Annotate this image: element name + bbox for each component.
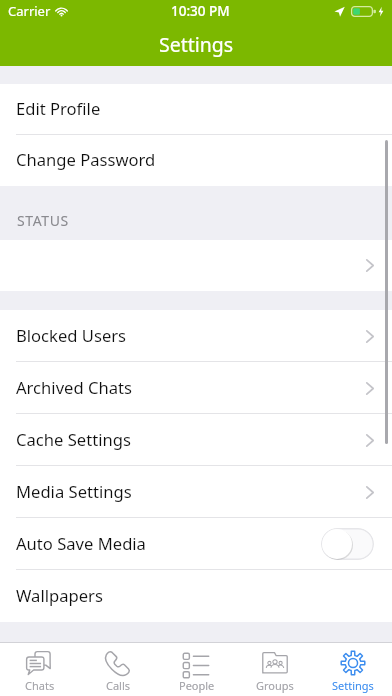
- staticText: Settings: [159, 31, 234, 58]
- button[interactable]: Set status: [0, 240, 392, 291]
- button[interactable]: Edit Profile: [0, 84, 392, 135]
- button[interactable]: People: [158, 643, 236, 696]
- button[interactable]: Wallpapers: [0, 570, 392, 622]
- button[interactable]: Settings: [314, 643, 392, 696]
- staticText: Blocked Users: [16, 324, 127, 347]
- button[interactable]: Archived Chats: [0, 362, 392, 414]
- staticText: Chats: [25, 678, 55, 693]
- button[interactable]: Blocked Users: [0, 310, 392, 362]
- staticText: Auto Save Media: [16, 532, 146, 555]
- button[interactable]: Calls: [79, 643, 158, 696]
- button[interactable]: Auto Save Media toggle, off: [321, 528, 374, 560]
- button[interactable]: Groups: [236, 643, 314, 696]
- staticText: 10:30 PM: [171, 2, 230, 20]
- staticText: Groups: [256, 678, 294, 693]
- staticText: Media Settings: [16, 480, 132, 503]
- staticText: Cache Settings: [16, 428, 131, 451]
- staticText: STATUS: [17, 211, 69, 230]
- staticText: Change Password: [16, 148, 156, 171]
- staticText: Carrier: [8, 2, 51, 20]
- button[interactable]: Cache Settings: [0, 414, 392, 466]
- staticText: Wallpapers: [16, 584, 103, 607]
- staticText: Archived Chats: [16, 376, 132, 399]
- button[interactable]: Auto Save Media: [0, 518, 392, 570]
- staticText: Settings: [332, 678, 374, 693]
- button[interactable]: Chats: [0, 643, 79, 696]
- button[interactable]: Media Settings: [0, 466, 392, 518]
- staticText: Calls: [106, 678, 131, 693]
- staticText: People: [179, 678, 215, 693]
- staticText: Edit Profile: [16, 97, 101, 120]
- button[interactable]: Change Password: [0, 135, 392, 186]
